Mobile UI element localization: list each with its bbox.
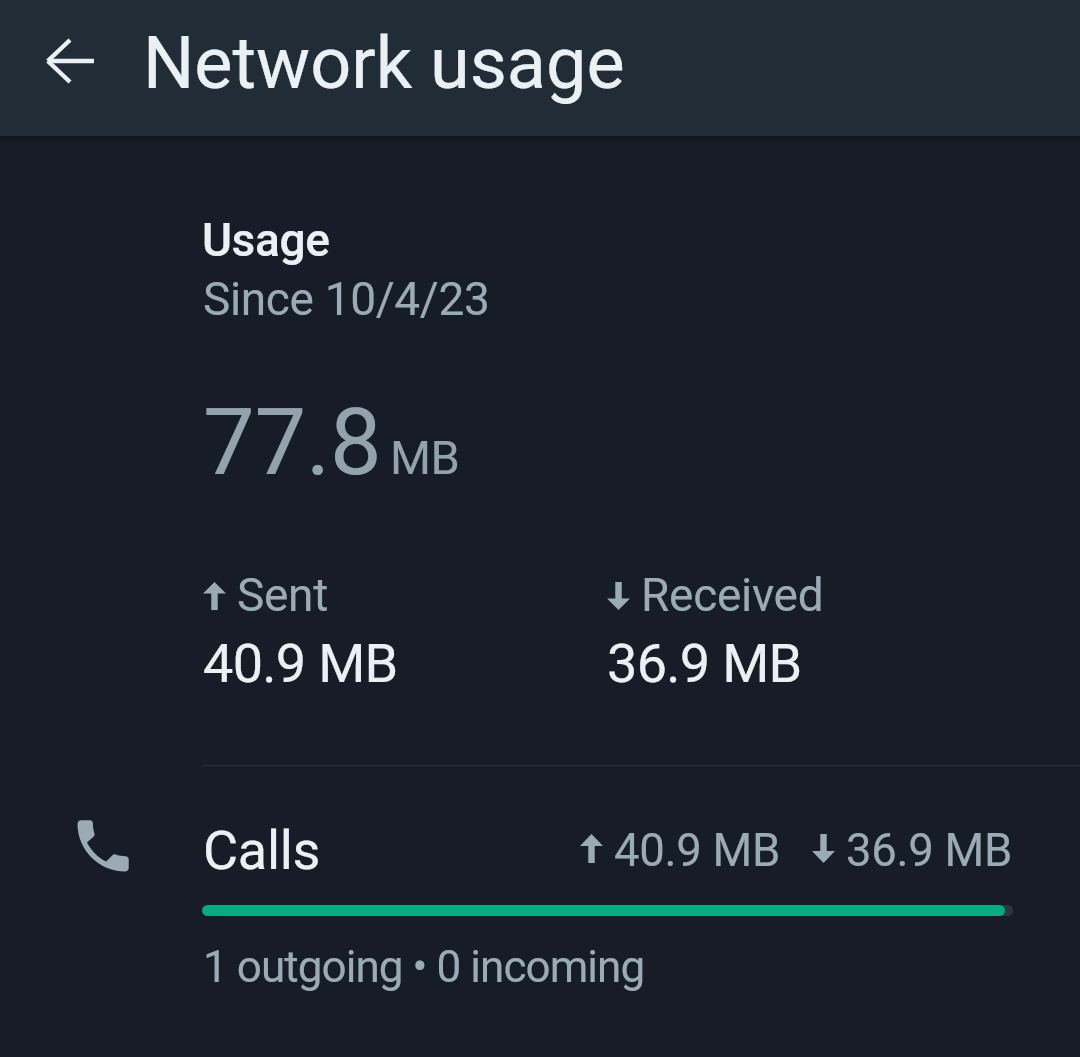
staticText: 1 outgoing • 0 incoming: [203, 941, 645, 993]
staticText: Since 10/4/23: [203, 272, 490, 326]
staticText: 77.8: [203, 389, 382, 497]
staticText: 40.9 MB: [614, 824, 780, 877]
staticText: Calls: [203, 819, 321, 882]
staticText: Usage: [202, 213, 330, 267]
staticText: Sent: [237, 568, 328, 622]
button[interactable]: Calls: [0, 766, 1080, 1006]
staticText: 40.9 MB: [203, 632, 398, 695]
staticText: 36.9 MB: [607, 632, 802, 695]
staticText: 36.9 MB: [846, 824, 1012, 877]
staticText: MB: [390, 430, 460, 485]
button[interactable]: Back: [24, 15, 116, 107]
staticText: Received: [641, 568, 824, 622]
staticText: Network usage: [143, 21, 625, 105]
